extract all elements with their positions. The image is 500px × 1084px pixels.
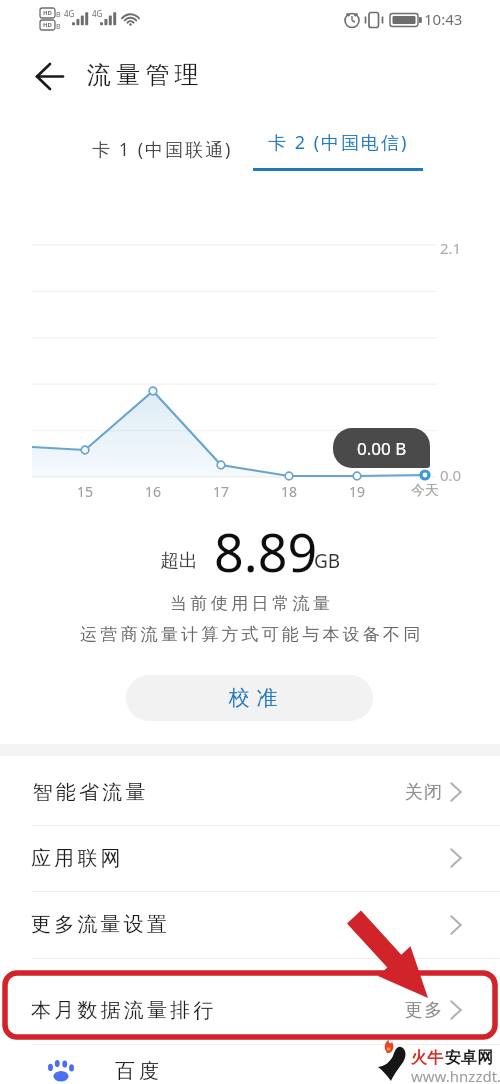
staticText: www.hnzzdt.com [411,1066,500,1084]
staticText: 更多 [404,999,443,1022]
staticText: 16 [145,482,162,501]
staticText: 火牛 [411,1048,443,1068]
staticText: 18 [281,482,298,501]
staticText: 15 [77,482,94,501]
button[interactable]: 校准 [126,675,373,721]
staticText: 应用联网 [31,846,124,871]
staticText: 4G [64,8,75,19]
button[interactable]: 卡 1 (中国联通) [70,126,254,172]
staticText: 19 [349,482,366,501]
staticText: 流量管理 [87,60,204,90]
staticText: 今天 [411,482,439,500]
button[interactable]: 卡 2 (中国电信) [248,126,428,174]
staticText: 当前使用日常流量 [170,593,334,614]
staticText: 超出 [160,549,198,573]
button[interactable]: 本月数据流量排行 [0,976,500,1044]
staticText: HD [43,21,52,29]
staticText: 8.89 [214,516,318,587]
button[interactable]: 百度 [0,1045,500,1084]
staticText: 卡 2 (中国电信) [268,130,409,155]
button[interactable]: 智能省流量 [0,759,500,825]
button[interactable]: 应用联网 [0,825,500,891]
staticText: 安卓网 [445,1048,493,1068]
button[interactable]: Back [26,54,72,100]
staticText: 2.1 [440,238,462,258]
staticText: 智能省流量 [31,780,147,805]
staticText: 10:43 [424,9,463,29]
staticText: 0.00 B [357,437,407,460]
staticText: 17 [213,482,230,501]
staticText: B [56,10,61,20]
staticText: 关闭 [404,781,443,804]
staticText: 运营商流量计算方式可能与本设备不同 [80,624,424,645]
button[interactable]: 更多流量设置 [0,891,500,958]
staticText: 4G [92,8,103,19]
staticText: 0.0 [440,465,462,485]
staticText: 更多流量设置 [31,912,171,937]
staticText: 本月数据流量排行 [31,998,217,1023]
staticText: 校准 [225,685,281,711]
staticText: GB [314,548,341,574]
staticText: B [56,22,61,32]
staticText: HD [43,9,52,17]
staticText: 百度 [113,1059,161,1084]
staticText: 卡 1 (中国联通) [92,137,233,162]
